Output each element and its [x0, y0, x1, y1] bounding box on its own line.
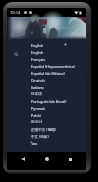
button[interactable]: Italiano [7, 84, 86, 91]
button[interactable]: Search [14, 52, 19, 57]
button[interactable]: Back [15, 152, 31, 166]
staticText: Italiano [31, 85, 44, 90]
staticText: 中文 (简体) [31, 134, 49, 139]
button[interactable]: 한국어 [7, 119, 86, 126]
button[interactable]: Español (Hispanoamérica) [7, 63, 86, 70]
staticText: Русский [31, 106, 45, 111]
button[interactable]: Recent apps [62, 152, 78, 166]
staticText: 正體中文 (繁體) [31, 127, 56, 132]
staticText: ไทย [31, 141, 38, 147]
staticText: Español (de México) [31, 71, 65, 76]
button[interactable]: English [7, 49, 86, 56]
button[interactable]: Deutsch [7, 77, 86, 84]
button[interactable]: Français [7, 56, 86, 63]
staticText: English [31, 50, 44, 55]
button[interactable]: ไทย [7, 140, 86, 147]
staticText: 日本語 [31, 92, 42, 97]
staticText: Polski [31, 113, 41, 118]
button[interactable]: Polski [7, 112, 86, 119]
staticText: Deutsch [31, 78, 45, 83]
button[interactable]: 日本語 [7, 91, 86, 98]
button[interactable]: 中文 (简体) [7, 133, 86, 140]
staticText: Español (Hispanoamérica) [31, 64, 75, 69]
button[interactable]: Português (do Brasil) [7, 98, 86, 105]
button[interactable]: Home [39, 152, 55, 166]
staticText: Português (do Brasil) [31, 99, 67, 104]
staticText: 한국어 [31, 120, 42, 125]
staticText: Français [31, 57, 45, 62]
staticText: 10:14 [10, 10, 21, 15]
staticText: English [31, 43, 44, 48]
button[interactable]: Español (de México) [7, 70, 86, 77]
button[interactable]: 正體中文 (繁體) [7, 126, 86, 133]
button[interactable]: English [7, 42, 86, 49]
button[interactable]: Русский [7, 105, 86, 112]
